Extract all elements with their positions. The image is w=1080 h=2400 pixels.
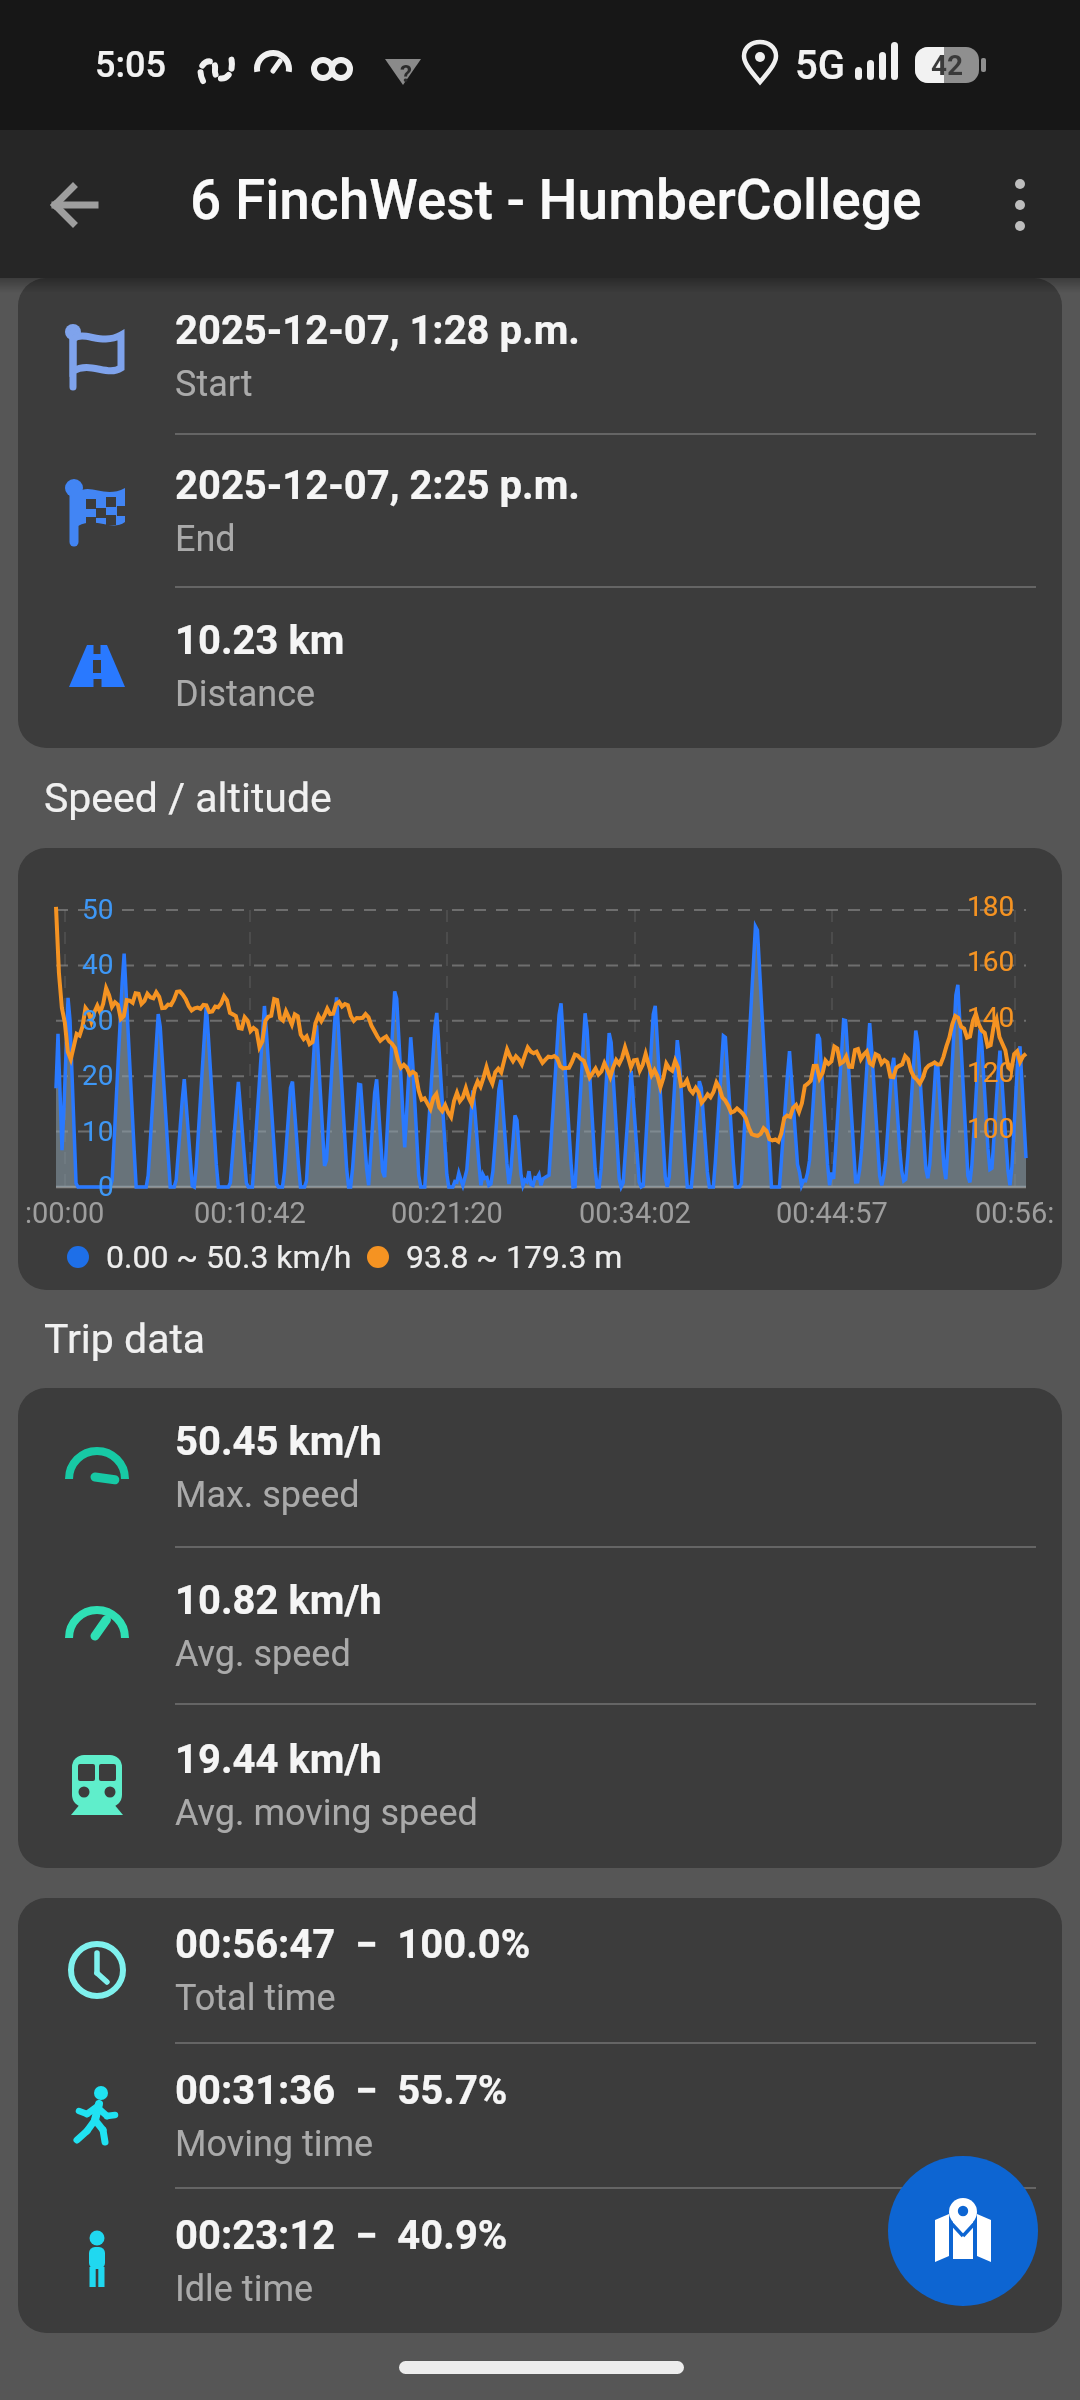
button[interactable]: 2025-12-07, 2:25 p.m. — [18, 435, 1062, 586]
staticText: Distance — [175, 673, 316, 715]
staticText: End — [175, 518, 236, 560]
staticText: 0 — [98, 1170, 114, 1203]
staticText: Total time — [175, 1977, 336, 2019]
button[interactable] — [888, 2156, 1038, 2306]
staticText: 180 — [967, 890, 1015, 923]
button[interactable]: 00:56:47 − 100.0% — [18, 1898, 1062, 2042]
staticText: 00:56:47 − 100.0% — [175, 1921, 531, 1968]
staticText: 40 — [82, 948, 114, 981]
staticText: Trip data — [44, 1315, 206, 1363]
staticText: 100 — [967, 1112, 1015, 1145]
staticText: Max. speed — [175, 1474, 360, 1516]
staticText: Idle time — [175, 2268, 314, 2310]
staticText: 50 — [82, 893, 114, 926]
staticText: 120 — [967, 1056, 1015, 1089]
staticText: 20 — [82, 1059, 114, 1092]
staticText: 00:23:12 − 40.9% — [175, 2212, 508, 2259]
staticText: 00:10:42 — [194, 1196, 306, 1230]
button[interactable] — [975, 160, 1065, 250]
staticText: Moving time — [175, 2123, 374, 2165]
staticText: 93.8 ~ 179.3 m — [406, 1238, 623, 1276]
staticText: Start — [175, 363, 253, 405]
button[interactable]: 10.23 km — [18, 588, 1062, 743]
staticText: 6 FinchWest - HumberCollege — [190, 168, 922, 232]
staticText: 5G — [795, 42, 845, 89]
staticText: ? — [400, 60, 412, 88]
staticText: 10.82 km/h — [175, 1577, 382, 1624]
staticText: 42 — [931, 49, 964, 82]
button[interactable] — [30, 160, 120, 250]
staticText: 2025-12-07, 2:25 p.m. — [175, 462, 580, 509]
button[interactable]: 00:23:12 − 40.9% — [18, 2189, 1062, 2333]
staticText: 10 — [82, 1115, 114, 1148]
staticText: 5:05 — [95, 44, 166, 86]
button[interactable]: 00:31:36 − 55.7% — [18, 2044, 1062, 2187]
staticText: Avg. moving speed — [175, 1792, 478, 1834]
staticText: 00:44:57 — [776, 1196, 888, 1230]
staticText: 19.44 km/h — [175, 1736, 382, 1783]
staticText: 0.00 ~ 50.3 km/h — [106, 1238, 352, 1276]
staticText: 00:21:20 — [391, 1196, 503, 1230]
staticText: 2025-12-07, 1:28 p.m. — [175, 307, 580, 354]
staticText: 140 — [967, 1001, 1015, 1034]
staticText: 160 — [967, 945, 1015, 978]
button[interactable]: 2025-12-07, 1:28 p.m. — [18, 278, 1062, 433]
staticText: 10.23 km — [175, 617, 345, 664]
button[interactable]: 19.44 km/h — [18, 1705, 1062, 1865]
staticText: 00:34:02 — [579, 1196, 691, 1230]
button[interactable]: 10.82 km/h — [18, 1548, 1062, 1703]
staticText: 50.45 km/h — [175, 1418, 382, 1465]
staticText: Avg. speed — [175, 1633, 351, 1675]
staticText: Speed / altitude — [44, 774, 332, 822]
button[interactable]: 50.45 km/h — [18, 1388, 1062, 1546]
staticText: :00:00 — [25, 1196, 105, 1230]
staticText: 00:31:36 − 55.7% — [175, 2067, 508, 2114]
staticText: 00:56: — [975, 1196, 1055, 1230]
staticText: 30 — [82, 1004, 114, 1037]
